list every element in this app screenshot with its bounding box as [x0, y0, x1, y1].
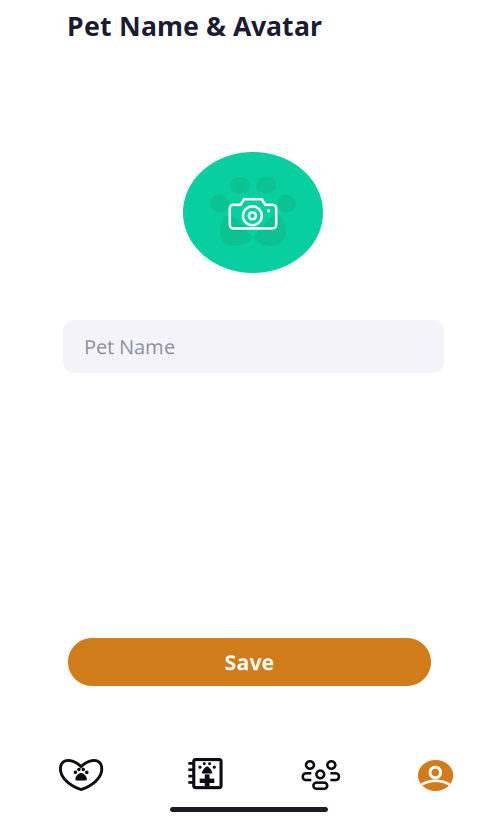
staticText: Pet Name & Avatar: [67, 8, 322, 43]
button[interactable]: Pet Name: [63, 320, 444, 373]
staticText: Pet Name: [84, 333, 175, 360]
button[interactable]: Pet journal: [187, 758, 223, 789]
button[interactable]: Favorites: [59, 758, 103, 791]
button[interactable]: Profile: [418, 760, 453, 791]
button[interactable]: Choose pet photo: [183, 152, 323, 273]
button[interactable]: Save: [68, 638, 431, 686]
staticText: Save: [224, 648, 274, 676]
button[interactable]: Community: [301, 759, 340, 790]
